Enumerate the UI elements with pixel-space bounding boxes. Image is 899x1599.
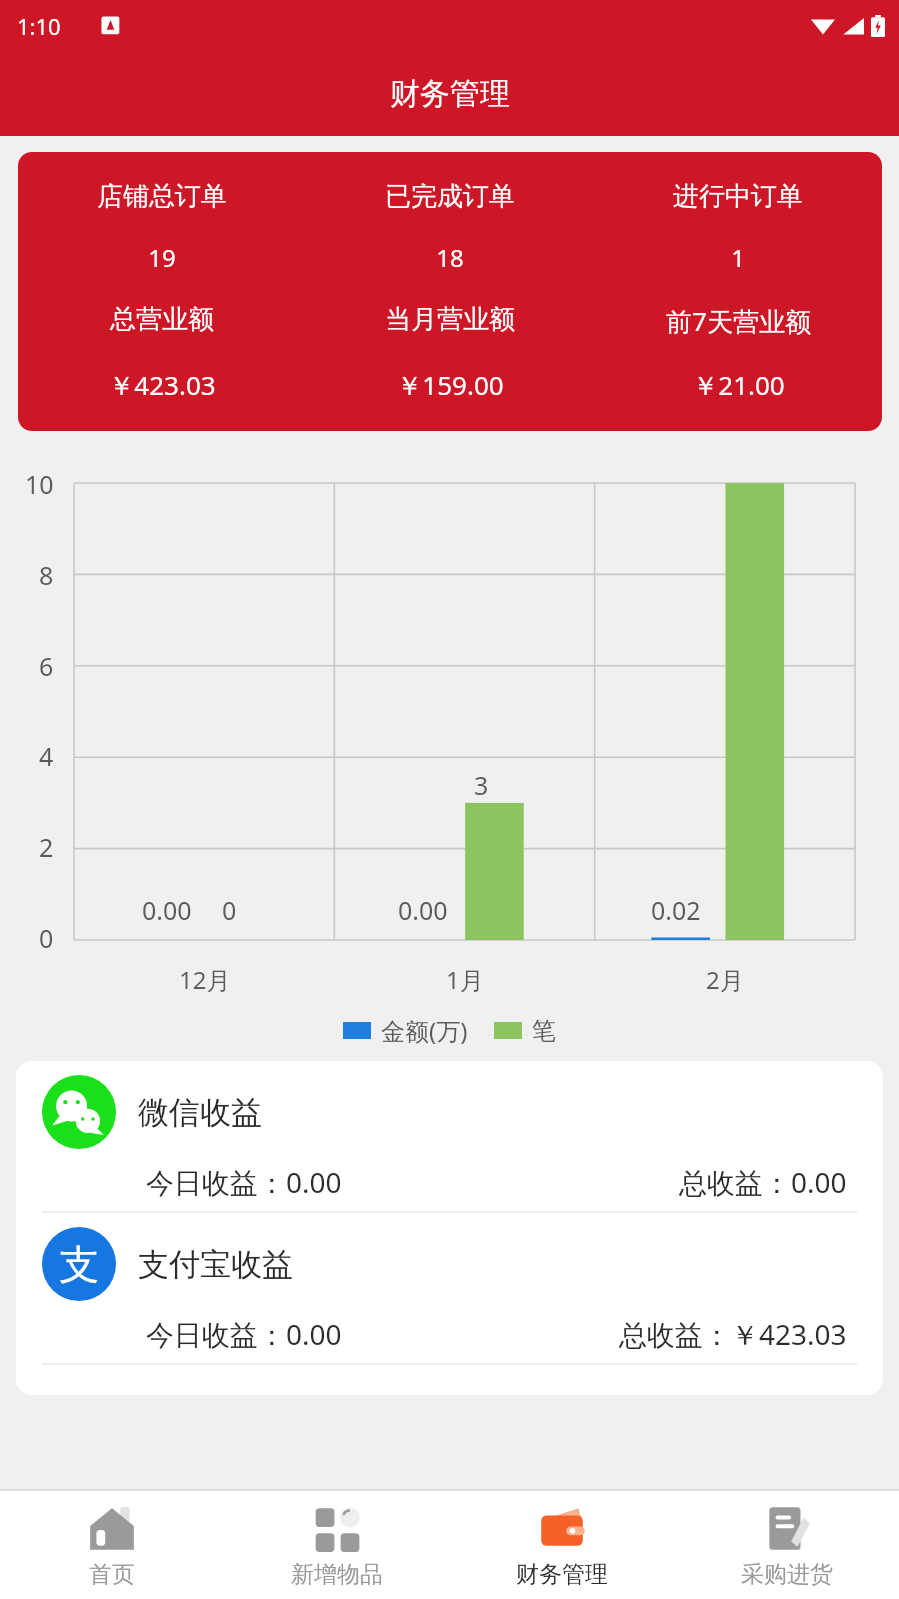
staticText: 前7天营业额	[666, 303, 811, 339]
button[interactable]: 新增物品	[224, 1491, 449, 1599]
staticText: 0.02	[651, 893, 701, 927]
staticText: 18	[436, 241, 464, 274]
staticText: 3	[474, 768, 489, 802]
staticText: ￥159.00	[396, 367, 504, 403]
staticText: 采购进货	[741, 1560, 833, 1589]
staticText: 今日收益：0.00	[146, 1315, 342, 1353]
staticText: 1月	[446, 963, 484, 996]
staticText: 微信收益	[138, 1093, 262, 1132]
staticText: 0.00	[398, 893, 448, 927]
staticText: 首页	[89, 1560, 135, 1589]
staticText: 财务管理	[516, 1560, 608, 1589]
staticText: 店铺总订单	[97, 180, 227, 213]
staticText: 总收益：￥423.03	[619, 1315, 847, 1353]
staticText: 6	[39, 649, 54, 683]
staticText: 8	[39, 558, 54, 592]
button[interactable]: 微信收益	[16, 1061, 883, 1211]
staticText: 2	[39, 830, 54, 864]
staticText: 19	[148, 241, 176, 274]
staticText: 财务管理	[390, 75, 510, 113]
staticText: 已完成订单	[385, 180, 515, 213]
staticText: ￥21.00	[692, 367, 785, 403]
staticText: 笔	[532, 1016, 556, 1046]
staticText: 12月	[179, 963, 231, 996]
staticText: 0	[222, 893, 237, 927]
button[interactable]: 首页	[0, 1491, 224, 1599]
button[interactable]: 支	[16, 1213, 883, 1363]
staticText: 总收益：0.00	[679, 1163, 847, 1201]
staticText: 10	[25, 467, 54, 501]
staticText: 金额(万)	[381, 1014, 468, 1047]
staticText: 进行中订单	[673, 180, 803, 213]
staticText: 1:10	[17, 11, 61, 41]
staticText: 2月	[706, 963, 744, 996]
button[interactable]: 店铺总订单	[18, 152, 882, 431]
staticText: 1	[731, 241, 745, 274]
staticText: 4	[39, 739, 54, 773]
staticText: 当月营业额	[385, 303, 515, 336]
staticText: 支付宝收益	[138, 1245, 293, 1284]
staticText: 今日收益：0.00	[146, 1163, 342, 1201]
staticText: 新增物品	[291, 1560, 383, 1589]
button[interactable]: 采购进货	[674, 1491, 899, 1599]
staticText: 0.00	[142, 893, 192, 927]
staticText: 支	[59, 1239, 99, 1289]
staticText: 0	[39, 921, 54, 955]
button[interactable]: 财务管理	[449, 1491, 674, 1599]
staticText: ￥423.03	[108, 367, 216, 403]
staticText: 总营业额	[110, 303, 214, 336]
